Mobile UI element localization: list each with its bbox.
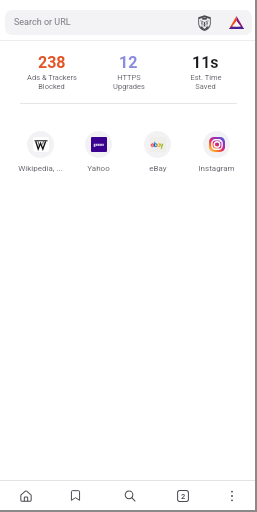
button[interactable]: Instagram bbox=[187, 131, 246, 173]
staticText: eBay bbox=[149, 164, 167, 173]
button[interactable]: Home bbox=[0, 481, 52, 510]
staticText: Est. Time bbox=[190, 73, 222, 82]
staticText: Wikipedia, ... bbox=[18, 164, 63, 173]
button[interactable]: Brave Shields bbox=[194, 10, 215, 35]
button[interactable]: Yahoo bbox=[69, 131, 128, 173]
staticText: Search or URL bbox=[14, 17, 71, 28]
button[interactable]: Search or URL bbox=[5, 10, 252, 35]
staticText: Blocked bbox=[38, 82, 65, 91]
staticText: Upgrades bbox=[113, 82, 145, 91]
staticText: Yahoo bbox=[87, 164, 110, 173]
staticText: 12 bbox=[119, 53, 138, 72]
button[interactable]: Bookmarks bbox=[52, 481, 104, 510]
staticText: 2 bbox=[181, 492, 186, 501]
button[interactable]: Wikipedia, ... bbox=[11, 131, 69, 173]
staticText: Saved bbox=[195, 82, 216, 91]
staticText: HTTPS bbox=[117, 73, 141, 82]
staticText: Ads & Trackers bbox=[27, 73, 77, 82]
button[interactable]: Tabs, 2 open bbox=[155, 481, 206, 510]
staticText: 238 bbox=[38, 53, 66, 72]
button[interactable]: More options bbox=[206, 481, 257, 510]
staticText: 11s bbox=[192, 53, 219, 72]
button[interactable]: eBay bbox=[128, 131, 187, 173]
staticText: Instagram bbox=[198, 164, 235, 173]
button[interactable]: Brave Rewards bbox=[226, 10, 247, 35]
button[interactable]: Search bbox=[104, 481, 155, 510]
